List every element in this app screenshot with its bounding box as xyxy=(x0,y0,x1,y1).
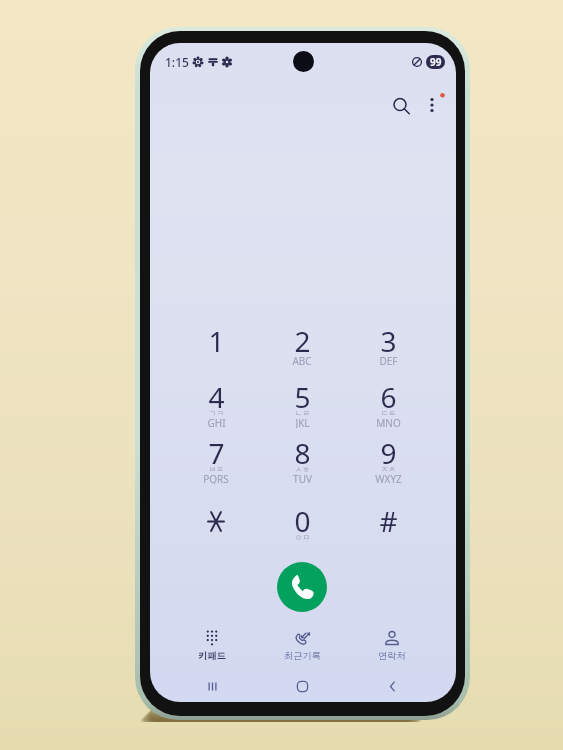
staticText: 0 xyxy=(294,502,311,540)
staticText: 키패드 xyxy=(198,650,226,662)
staticText: GHI xyxy=(207,416,226,428)
button[interactable]: Dial 2 xyxy=(260,315,344,367)
button[interactable]: Dial # xyxy=(346,495,430,547)
button[interactable]: 키패드 xyxy=(166,623,258,667)
staticText: 연락처 xyxy=(378,650,406,662)
staticText: 9 xyxy=(380,434,397,472)
button[interactable]: Dial 9 xyxy=(346,427,430,479)
staticText: 3 xyxy=(380,322,397,360)
staticText: ㅅㅎ xyxy=(295,465,310,474)
button[interactable]: Dial 4 xyxy=(174,371,258,423)
staticText: JKL xyxy=(295,416,310,428)
staticText: 2 xyxy=(294,322,311,360)
staticText: 8 xyxy=(294,434,311,472)
button[interactable]: 최근기록 xyxy=(256,623,348,667)
button[interactable]: Dial * xyxy=(174,495,258,547)
staticText: 5 xyxy=(294,378,311,416)
button[interactable]: Recents xyxy=(190,667,234,702)
staticText: 6 xyxy=(380,378,397,416)
staticText: 1:15 xyxy=(165,54,189,69)
button[interactable]: Dial 0 xyxy=(260,495,344,547)
button[interactable]: 연락처 xyxy=(346,623,438,667)
staticText: ㄱㅋ xyxy=(209,409,224,418)
button[interactable]: Home xyxy=(280,667,324,702)
staticText: ㅈㅊ xyxy=(381,465,396,474)
button[interactable]: More options xyxy=(414,87,450,123)
staticText: MNO xyxy=(376,416,401,428)
button[interactable]: Dial 8 xyxy=(260,427,344,479)
staticText: TUV xyxy=(293,472,312,484)
staticText: ㅇㅁ xyxy=(295,533,310,542)
staticText: # xyxy=(379,502,398,540)
button[interactable]: Dial 6 xyxy=(346,371,430,423)
button[interactable]: Dial 1 xyxy=(174,315,258,367)
staticText: 4 xyxy=(208,378,225,416)
staticText: ㅂㅍ xyxy=(209,465,224,474)
staticText: 99 xyxy=(430,55,442,69)
staticText: 최근기록 xyxy=(284,650,321,662)
staticText: ㄷㅌ xyxy=(381,409,396,418)
staticText: 1 xyxy=(208,322,225,360)
button[interactable]: Dial 5 xyxy=(260,371,344,423)
button[interactable]: Dial 3 xyxy=(346,315,430,367)
staticText: ABC xyxy=(292,354,312,366)
staticText: 7 xyxy=(208,434,225,472)
staticText: WXYZ xyxy=(375,472,402,484)
button[interactable]: Back xyxy=(370,667,414,702)
button[interactable]: Dial 7 xyxy=(174,427,258,479)
button[interactable]: Search xyxy=(382,87,420,125)
button[interactable]: Call xyxy=(277,562,327,612)
staticText: ㄴㄹ xyxy=(295,409,310,418)
staticText: DEF xyxy=(379,354,398,366)
staticText: PQRS xyxy=(203,472,229,484)
